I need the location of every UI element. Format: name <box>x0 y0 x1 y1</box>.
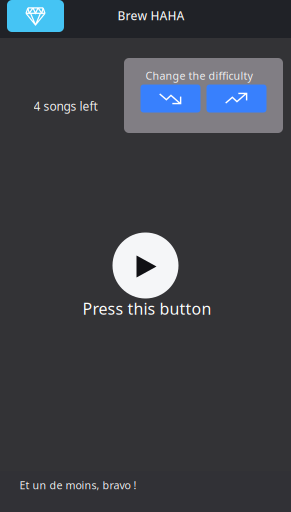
staticText: Change the difficulty <box>145 68 252 83</box>
button[interactable]: Decrease the difficulty <box>140 84 200 112</box>
button[interactable]: Increase the difficulty <box>206 84 266 112</box>
staticText: Brew HAHA <box>117 7 184 23</box>
button[interactable]: Gems <box>7 0 64 32</box>
button[interactable]: Play <box>112 232 178 298</box>
staticText: 4 songs left <box>33 98 97 114</box>
staticText: Et un de moins, bravo ! <box>19 478 136 492</box>
staticText: Press this button <box>82 298 211 319</box>
